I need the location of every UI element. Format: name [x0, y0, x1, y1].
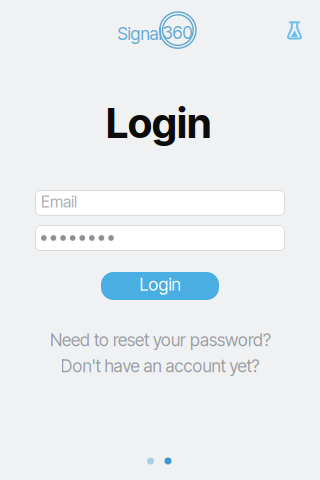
button[interactable]: Login	[101, 272, 219, 300]
staticText: 360	[162, 22, 192, 43]
button[interactable]: Email	[35, 190, 285, 216]
button[interactable]: Password	[35, 225, 285, 251]
button[interactable]: Need to reset your password?	[50, 329, 271, 350]
staticText: Login	[139, 274, 180, 295]
staticText: Email	[41, 192, 77, 211]
button[interactable]: Don't have an account yet?	[60, 355, 259, 376]
button[interactable]: Developer mode	[0, 0, 320, 480]
staticText: Login	[106, 98, 211, 148]
staticText: Don't have an account yet?	[60, 355, 259, 376]
staticText: Need to reset your password?	[50, 329, 271, 350]
staticText: Signal	[117, 23, 161, 44]
